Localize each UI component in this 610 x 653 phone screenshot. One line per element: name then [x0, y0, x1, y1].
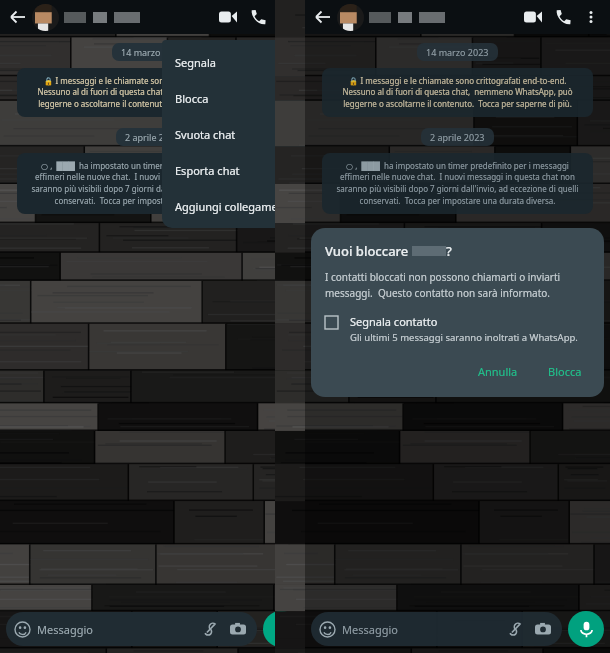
- button[interactable]: 14 marzo 2023: [112, 43, 193, 61]
- staticText: Annulla: [478, 364, 518, 379]
- button[interactable]: Messaggio: [311, 612, 562, 646]
- button[interactable]: Segnala contatto: [325, 314, 590, 344]
- staticText: 🔒 I messaggi e le chiamate sono crittogr…: [27, 75, 278, 110]
- button[interactable]: Blocca: [162, 80, 305, 116]
- button[interactable]: 🔒 I messaggi e le chiamate sono crittogr…: [17, 68, 288, 117]
- button[interactable]: Chiamata: [548, 2, 578, 32]
- staticText: Messaggio: [37, 622, 93, 637]
- staticText: Segnala: [175, 55, 216, 70]
- button[interactable]: Videochiamata: [518, 2, 548, 32]
- staticText: 2 aprile 2023: [125, 131, 180, 143]
- staticText: 14 marzo 2023: [121, 46, 184, 58]
- staticText: 2 aprile 2023: [430, 131, 485, 143]
- button[interactable]: Indietro: [311, 5, 335, 29]
- button[interactable]: 2 aprile 2023: [116, 128, 189, 146]
- staticText: Blocca: [548, 364, 582, 379]
- button[interactable]: Annulla: [470, 360, 526, 383]
- button[interactable]: Indietro: [6, 5, 30, 29]
- button[interactable]: Altre opzioni: [578, 4, 604, 30]
- button[interactable]: Messaggio: [6, 612, 257, 646]
- button[interactable]: Segnala: [162, 44, 305, 80]
- staticText: Blocca: [175, 91, 209, 106]
- button[interactable]: Videochiamata: [213, 2, 243, 32]
- staticText: Svuota chat: [175, 127, 236, 142]
- button[interactable]: ○ , ███ ha impostato un timer predefinit…: [17, 153, 288, 214]
- button[interactable]: Fotocamera: [533, 619, 553, 639]
- button[interactable]: Fotocamera: [228, 619, 248, 639]
- button[interactable]: Messaggio vocale: [568, 611, 604, 647]
- button[interactable]: Allega: [505, 619, 525, 639]
- staticText: Segnala contatto: [350, 314, 438, 329]
- button[interactable]: Chiamata: [243, 2, 273, 32]
- button[interactable]: 14 marzo 2023: [417, 43, 498, 61]
- staticText: ○ , ███ ha impostato un timer predefinit…: [27, 160, 278, 207]
- staticText: Aggiungi collegamento: [175, 199, 296, 214]
- staticText: ?: [446, 242, 452, 260]
- staticText: Vuoi bloccare: [325, 242, 412, 260]
- staticText: 14 marzo 2023: [426, 46, 489, 58]
- button[interactable]: ○ , ███ ha impostato un timer predefinit…: [322, 153, 593, 214]
- staticText: I contatti bloccati non possono chiamart…: [325, 270, 590, 300]
- button[interactable]: 2 aprile 2023: [421, 128, 494, 146]
- button[interactable]: 🔒 I messaggi e le chiamate sono crittogr…: [322, 68, 593, 117]
- button[interactable]: Profilo: [337, 4, 364, 31]
- staticText: Messaggio: [342, 622, 398, 637]
- staticText: ○ , ███ ha impostato un timer predefinit…: [332, 160, 583, 207]
- button[interactable]: Esporta chat: [162, 152, 305, 188]
- button[interactable]: Blocca: [540, 360, 590, 383]
- staticText: Esporta chat: [175, 163, 240, 178]
- button[interactable]: Allega: [200, 619, 220, 639]
- staticText: Gli ultimi 5 messaggi saranno inoltrati …: [350, 331, 578, 344]
- button[interactable]: Altre opzioni: [273, 4, 299, 30]
- staticText: 🔒 I messaggi e le chiamate sono crittogr…: [332, 75, 583, 110]
- button[interactable]: Messaggio vocale: [263, 611, 299, 647]
- button[interactable]: Profilo: [32, 4, 59, 31]
- button[interactable]: Aggiungi collegamento: [162, 188, 305, 224]
- button[interactable]: Svuota chat: [162, 116, 305, 152]
